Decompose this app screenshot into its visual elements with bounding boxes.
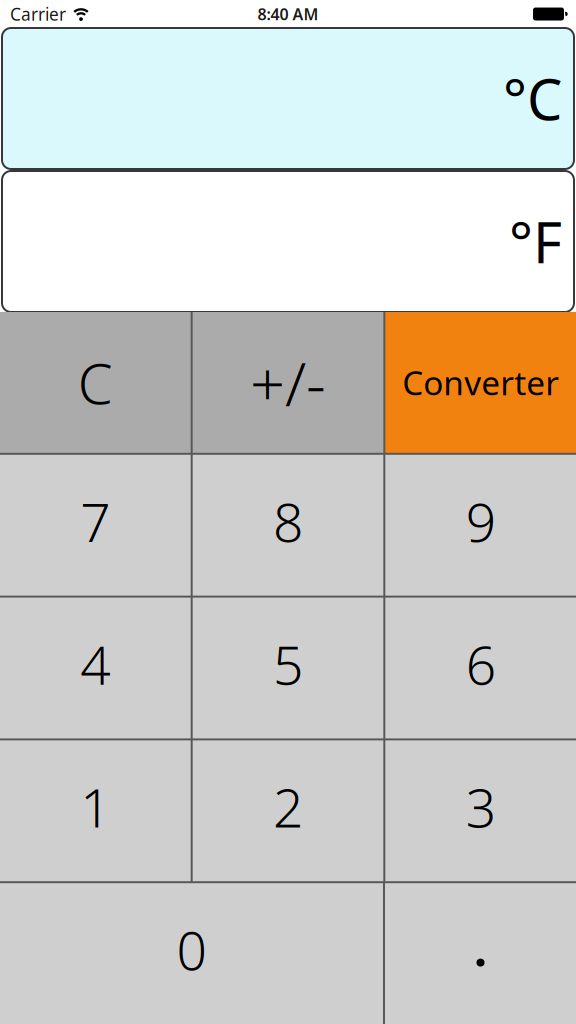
staticText: 6: [466, 629, 496, 699]
button[interactable]: Converter: [385, 312, 576, 453]
staticText: 7: [80, 486, 110, 557]
staticText: 1: [80, 771, 110, 842]
button[interactable]: 9: [385, 455, 576, 596]
button[interactable]: 6: [385, 598, 576, 738]
staticText: 2: [273, 771, 303, 842]
button[interactable]: [385, 883, 576, 1024]
button[interactable]: 0: [0, 883, 383, 1024]
staticText: 3: [466, 771, 496, 842]
staticText: 9: [466, 486, 496, 557]
staticText: 8: [273, 486, 303, 557]
button[interactable]: 1: [0, 740, 191, 881]
button[interactable]: °F: [2, 171, 574, 312]
button[interactable]: +/-: [193, 312, 383, 453]
staticText: Carrier: [10, 2, 66, 25]
button[interactable]: °C: [2, 28, 574, 169]
button[interactable]: 8: [193, 455, 383, 596]
button[interactable]: C: [0, 312, 191, 453]
button[interactable]: 4: [0, 598, 191, 738]
staticText: +/-: [250, 342, 326, 423]
button[interactable]: 5: [193, 598, 383, 738]
button[interactable]: 7: [0, 455, 191, 596]
staticText: 5: [273, 629, 303, 699]
staticText: 4: [80, 629, 110, 699]
staticText: °F: [509, 204, 562, 279]
button[interactable]: 2: [193, 740, 383, 881]
staticText: C: [78, 345, 113, 420]
staticText: Converter: [402, 360, 559, 405]
button[interactable]: 3: [385, 740, 576, 881]
staticText: 8:40 AM: [257, 3, 318, 25]
staticText: 0: [176, 914, 206, 985]
staticText: °C: [503, 61, 562, 136]
